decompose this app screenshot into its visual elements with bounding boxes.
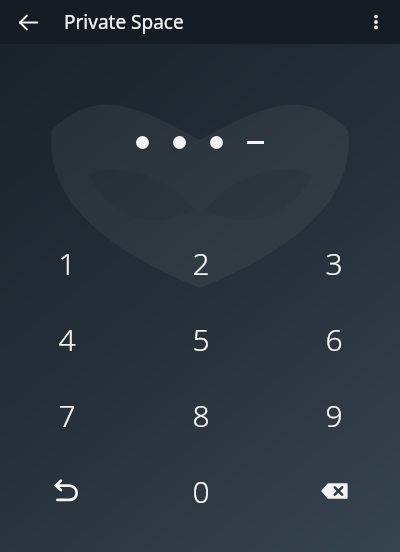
button[interactable]: 6	[267, 301, 400, 377]
button[interactable]: Undo	[0, 453, 134, 529]
staticText: 3	[325, 243, 343, 284]
staticText: Private Space	[64, 9, 184, 35]
button[interactable]: 7	[0, 377, 134, 453]
button[interactable]: 8	[134, 377, 267, 453]
staticText: 1	[58, 243, 76, 284]
staticText: 2	[192, 243, 210, 284]
button[interactable]: 0	[134, 453, 267, 529]
staticText: 6	[325, 319, 343, 360]
button[interactable]: 1	[0, 225, 134, 301]
staticText: 8	[192, 395, 210, 436]
button[interactable]: More options	[357, 3, 395, 41]
button[interactable]: 2	[134, 225, 267, 301]
button[interactable]: Back	[9, 3, 47, 41]
staticText: 4	[58, 319, 76, 360]
staticText: 9	[325, 395, 343, 436]
staticText: 0	[192, 471, 210, 512]
button[interactable]: 3	[267, 225, 400, 301]
button[interactable]: 5	[134, 301, 267, 377]
button[interactable]: 4	[0, 301, 134, 377]
staticText: 7	[58, 395, 76, 436]
button[interactable]: 9	[267, 377, 400, 453]
button[interactable]: Backspace	[267, 453, 400, 529]
staticText: 5	[192, 319, 210, 360]
